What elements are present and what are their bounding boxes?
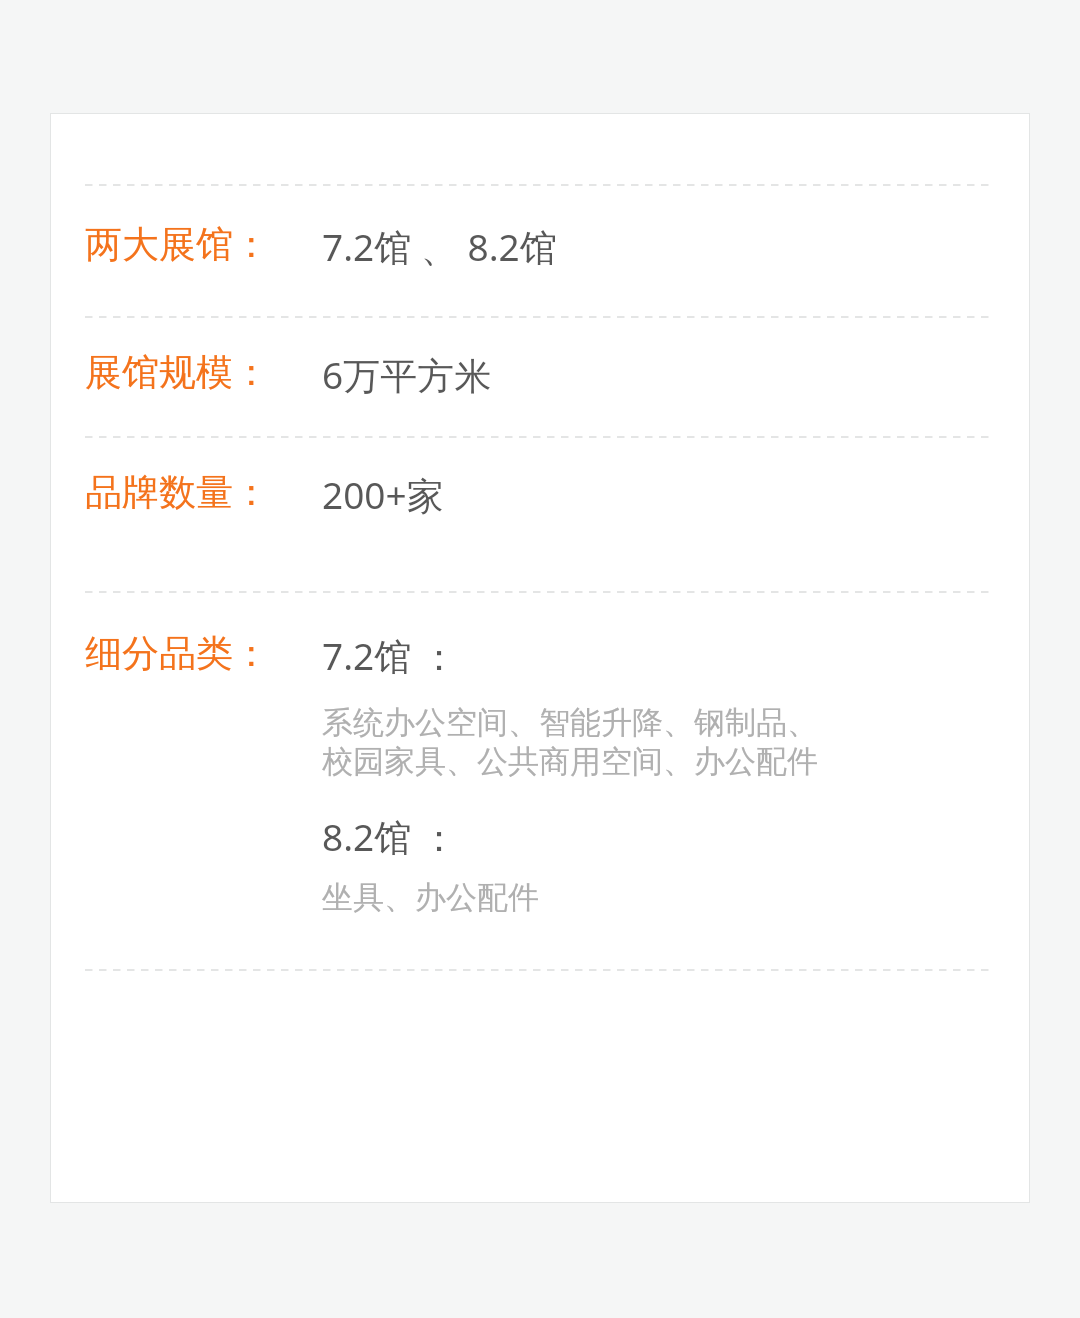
button[interactable]: 展馆规模： [85,349,993,400]
staticText: 坐具、办公配件 [322,878,539,917]
staticText: 校园家具、公共商用空间、办公配件 [322,742,818,781]
staticText: 细分品类： [85,630,322,677]
staticText: 两大展馆： [85,221,322,268]
staticText: 8.2馆 ： [322,811,458,862]
staticText: 200+家 [322,469,444,520]
button[interactable]: 品牌数量： [85,469,993,520]
staticText: 6万平方米 [322,349,492,400]
button[interactable]: 两大展馆： [85,221,993,272]
staticText: 7.2馆 、 8.2馆 [322,221,557,272]
staticText: 展馆规模： [85,349,322,396]
staticText: 7.2馆 ： [322,630,458,681]
staticText: 品牌数量： [85,469,322,516]
staticText: 系统办公空间、智能升降、钢制品、 [322,703,818,742]
button[interactable]: 细分品类： [85,630,993,917]
